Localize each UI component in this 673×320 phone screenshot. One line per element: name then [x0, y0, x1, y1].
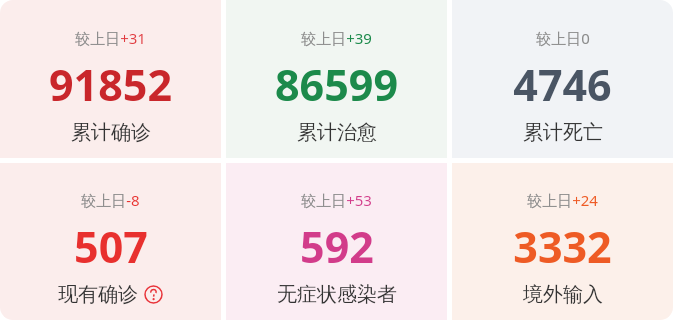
button[interactable]: 较上日0	[452, 0, 673, 158]
staticText: 较上日+24	[527, 190, 598, 210]
staticText: 较上日0	[536, 28, 590, 48]
button[interactable]: 较上日-8	[0, 163, 221, 320]
staticText: 现有确诊	[58, 282, 138, 307]
staticText: 3332	[513, 217, 612, 276]
button[interactable]: 较上日+24	[452, 163, 673, 320]
staticText: 592	[300, 217, 374, 276]
staticText: 较上日+53	[301, 190, 372, 210]
button[interactable]: 帮助说明	[144, 285, 163, 304]
staticText: 较上日+39	[301, 28, 372, 48]
staticText: 91852	[49, 55, 172, 114]
staticText: 较上日+31	[75, 28, 146, 48]
staticText: 累计死亡	[523, 120, 603, 145]
button[interactable]: 较上日+31	[0, 0, 221, 158]
staticText: 507	[74, 217, 148, 276]
button[interactable]: 较上日+39	[226, 0, 447, 158]
staticText: 4746	[513, 55, 612, 114]
staticText: 境外输入	[523, 282, 603, 307]
staticText: 无症状感染者	[277, 282, 397, 307]
button[interactable]: 较上日+53	[226, 163, 447, 320]
staticText: 较上日-8	[81, 190, 140, 210]
staticText: 86599	[275, 55, 398, 114]
staticText: 累计确诊	[71, 120, 151, 145]
staticText: 累计治愈	[297, 120, 377, 145]
